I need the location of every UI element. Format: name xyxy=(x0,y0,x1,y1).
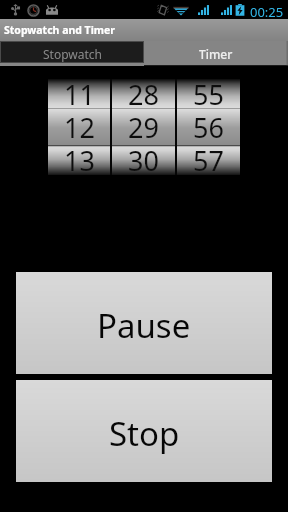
staticText: Pause xyxy=(97,303,191,348)
staticText: Stopwatch xyxy=(43,46,102,62)
staticText: Timer xyxy=(199,46,233,62)
staticText: Stop xyxy=(109,411,180,456)
staticText: 29 xyxy=(128,109,159,143)
button[interactable]: Timer xyxy=(144,41,288,66)
staticText: 30 xyxy=(128,142,159,176)
staticText: 57 xyxy=(193,142,224,176)
staticText: 28 xyxy=(128,76,159,110)
staticText: 55 xyxy=(193,76,224,110)
staticText: 11 xyxy=(64,76,95,110)
button[interactable]: 28 xyxy=(112,79,175,175)
button[interactable]: Pause xyxy=(16,272,272,374)
staticText: Stopwatch and Timer xyxy=(4,23,116,37)
button[interactable]: 11 xyxy=(48,79,110,175)
staticText: 13 xyxy=(64,142,95,176)
staticText: 00:25 xyxy=(250,3,284,21)
staticText: 12 xyxy=(64,109,95,143)
staticText: 56 xyxy=(193,109,224,143)
button[interactable]: Stopwatch xyxy=(0,41,144,66)
button[interactable]: 55 xyxy=(177,79,240,175)
button[interactable]: Stop xyxy=(16,380,272,482)
